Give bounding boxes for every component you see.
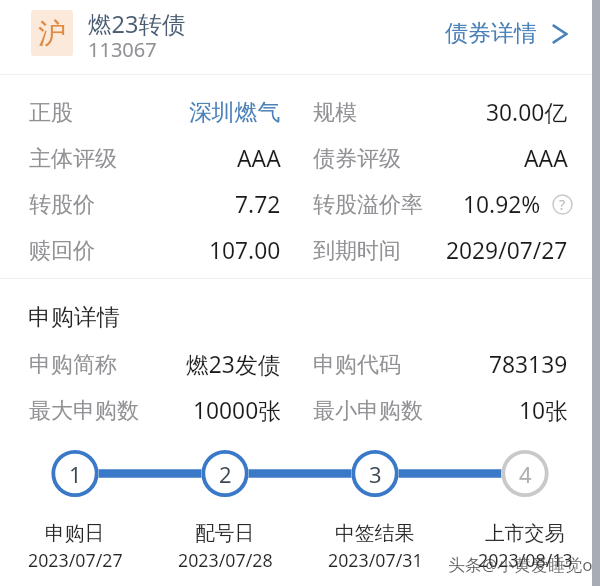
staticText: 申购代码 (313, 351, 401, 379)
staticText: 2023/07/28 (178, 548, 273, 572)
staticText: ? (559, 195, 566, 214)
staticText: 申购详情 (28, 303, 120, 332)
staticText: 最大申购数 (29, 397, 139, 425)
staticText: 转股溢价率 (313, 191, 423, 219)
staticText: 申购简称 (29, 351, 117, 379)
staticText: 2023/08/13 (478, 548, 573, 572)
staticText: 2023/07/27 (28, 548, 123, 572)
staticText: AAA (237, 143, 281, 174)
staticText: 中签结果 (335, 521, 415, 546)
staticText: 燃23转债 (88, 8, 186, 40)
staticText: 3 (369, 459, 382, 489)
staticText: 上市交易 (485, 521, 565, 546)
staticText: 沪 (38, 16, 66, 51)
staticText: 10000张 (193, 395, 281, 426)
staticText: 2029/07/27 (446, 235, 568, 266)
staticText: 债券评级 (313, 145, 401, 173)
staticText: AAA (524, 143, 568, 174)
staticText: 783139 (489, 349, 568, 380)
staticText: 10张 (519, 395, 568, 426)
staticText: 113067 (88, 36, 157, 63)
button[interactable]: 1 (0, 450, 150, 497)
staticText: 转股价 (29, 191, 95, 219)
staticText: 10.92% (463, 189, 541, 220)
staticText: 2023/07/31 (328, 548, 423, 572)
staticText: 主体评级 (29, 145, 117, 173)
staticText: 赎回价 (29, 237, 95, 265)
staticText: 1 (69, 459, 82, 489)
staticText: 规模 (313, 99, 357, 127)
staticText: 最小申购数 (313, 397, 423, 425)
button[interactable]: Help (552, 194, 573, 215)
button[interactable]: 2 (150, 450, 300, 497)
staticText: 配号日 (195, 521, 255, 546)
staticText: 头条@小黄爱睡觉o (448, 553, 593, 576)
staticText: 到期时间 (313, 237, 401, 265)
button[interactable]: 4 (450, 450, 600, 497)
button[interactable]: 债券详情 (433, 9, 600, 58)
staticText: 正股 (29, 99, 73, 127)
staticText: 107.00 (209, 235, 281, 266)
staticText: 2 (219, 459, 232, 489)
staticText: 30.00亿 (486, 97, 568, 128)
staticText: 4 (519, 459, 532, 489)
staticText: 深圳燃气 (189, 98, 281, 127)
staticText: 7.72 (235, 189, 281, 220)
button[interactable]: 3 (300, 450, 450, 497)
staticText: 燃23发债 (186, 349, 281, 380)
staticText: 债券详情 (445, 19, 537, 48)
button[interactable]: 沪 (31, 10, 73, 56)
staticText: 申购日 (45, 521, 105, 546)
